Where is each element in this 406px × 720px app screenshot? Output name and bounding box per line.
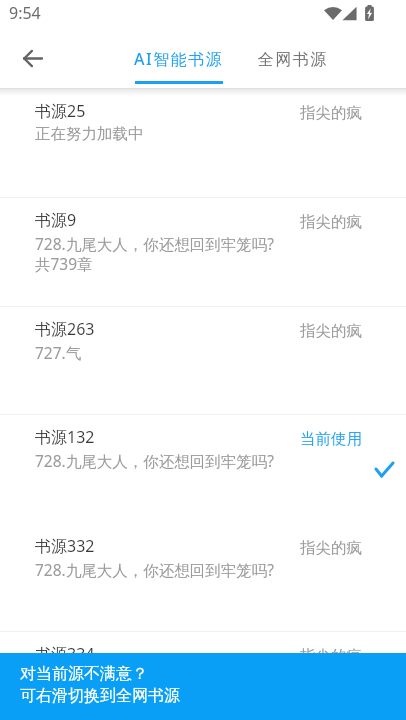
button[interactable]: 书源332 bbox=[0, 525, 406, 632]
staticText: 共739章 bbox=[35, 253, 93, 274]
staticText: 727.气 bbox=[35, 342, 82, 363]
staticText: 书源25 bbox=[35, 100, 86, 122]
staticText: AI智能书源 bbox=[134, 48, 224, 70]
button[interactable]: 书源263 bbox=[0, 308, 406, 415]
staticText: 书源9 bbox=[35, 209, 77, 231]
staticText: 指尖的疯 bbox=[300, 103, 362, 123]
button[interactable]: Back bbox=[8, 34, 56, 82]
staticText: 指尖的疯 bbox=[300, 646, 362, 666]
staticText: 9:54 bbox=[9, 2, 41, 24]
staticText: 书源263 bbox=[35, 318, 95, 340]
staticText: 书源334 bbox=[35, 643, 95, 665]
button[interactable]: 全网书源 bbox=[244, 34, 340, 88]
staticText: 可右滑切换到全网书源 bbox=[20, 686, 180, 706]
button[interactable]: 书源132 bbox=[0, 416, 406, 524]
staticText: 指尖的疯 bbox=[300, 321, 362, 341]
staticText: 全网书源 bbox=[257, 50, 327, 70]
staticText: 728.九尾大人，你还想回到牢笼吗? bbox=[35, 233, 274, 254]
button[interactable]: AI智能书源 bbox=[119, 34, 239, 88]
button[interactable]: 对当前源不满意？ bbox=[0, 653, 406, 720]
button[interactable]: 书源334 bbox=[0, 633, 406, 720]
button[interactable]: 书源9 bbox=[0, 199, 406, 307]
staticText: 对当前源不满意？ bbox=[20, 664, 148, 684]
staticText: 728.九尾大人，你还想回到牢笼吗? bbox=[35, 450, 274, 471]
staticText: 书源332 bbox=[35, 535, 95, 557]
staticText: 指尖的疯 bbox=[300, 538, 362, 558]
staticText: 728.九尾大人，你还想回到牢笼吗? bbox=[35, 559, 274, 580]
staticText: 书源132 bbox=[35, 426, 95, 448]
staticText: 正在努力加载中 bbox=[35, 124, 144, 144]
staticText: 当前使用 bbox=[300, 429, 362, 449]
button[interactable]: 书源25 bbox=[0, 90, 406, 198]
staticText: 指尖的疯 bbox=[300, 212, 362, 232]
